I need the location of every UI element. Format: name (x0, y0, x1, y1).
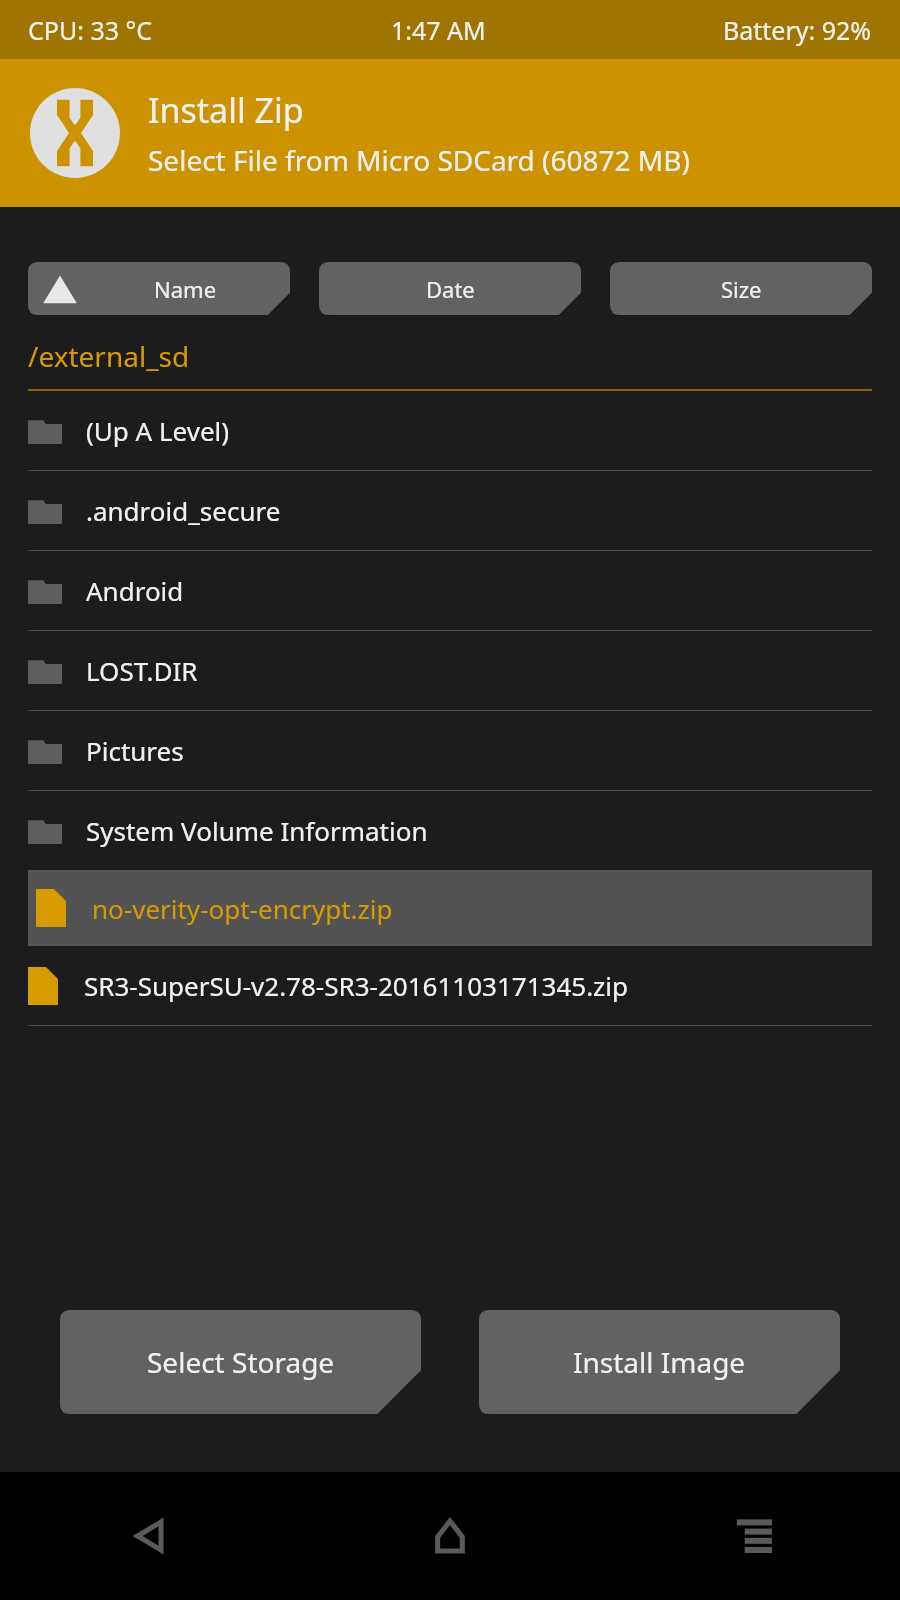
button[interactable]: Size (610, 262, 872, 315)
button[interactable]: Android (0, 551, 900, 630)
staticText: Name (154, 274, 217, 304)
button[interactable]: Pictures (0, 711, 900, 790)
staticText: Android (86, 573, 184, 608)
staticText: .android_secure (86, 493, 281, 528)
staticText: Pictures (86, 733, 184, 768)
button[interactable]: no-verity-opt-encrypt.zip (28, 870, 872, 946)
staticText: 1:47 AM (391, 13, 486, 47)
button[interactable]: .android_secure (0, 471, 900, 550)
staticText: Date (426, 274, 475, 304)
staticText: Select Storage (147, 1343, 335, 1381)
staticText: /external_sd (28, 337, 190, 375)
button[interactable]: LOST.DIR (0, 631, 900, 710)
staticText: Size (721, 274, 762, 304)
staticText: no-verity-opt-encrypt.zip (92, 891, 393, 926)
staticText: (Up A Level) (86, 413, 230, 448)
button[interactable]: Select Storage (60, 1310, 421, 1414)
staticText: LOST.DIR (86, 653, 198, 688)
staticText: System Volume Information (86, 813, 428, 848)
button[interactable]: Install Image (479, 1310, 840, 1414)
button[interactable]: (Up A Level) (0, 391, 900, 470)
staticText: Select File from Micro SDCard (60872 MB) (148, 141, 690, 179)
button[interactable]: Date (319, 262, 581, 315)
staticText: Install Image (573, 1343, 746, 1381)
button[interactable]: Name (28, 262, 290, 315)
staticText: Battery: 92% (723, 13, 872, 47)
staticText: Install Zip (148, 87, 304, 133)
button[interactable]: Back (0, 1472, 300, 1600)
staticText: SR3-SuperSU-v2.78-SR3-20161103171345.zip (84, 968, 629, 1003)
button[interactable]: Home (300, 1472, 600, 1600)
button[interactable]: System Volume Information (0, 791, 900, 870)
button[interactable]: SR3-SuperSU-v2.78-SR3-20161103171345.zip (0, 946, 900, 1025)
staticText: CPU: 33 °C (28, 13, 153, 47)
button[interactable]: Menu (600, 1472, 900, 1600)
